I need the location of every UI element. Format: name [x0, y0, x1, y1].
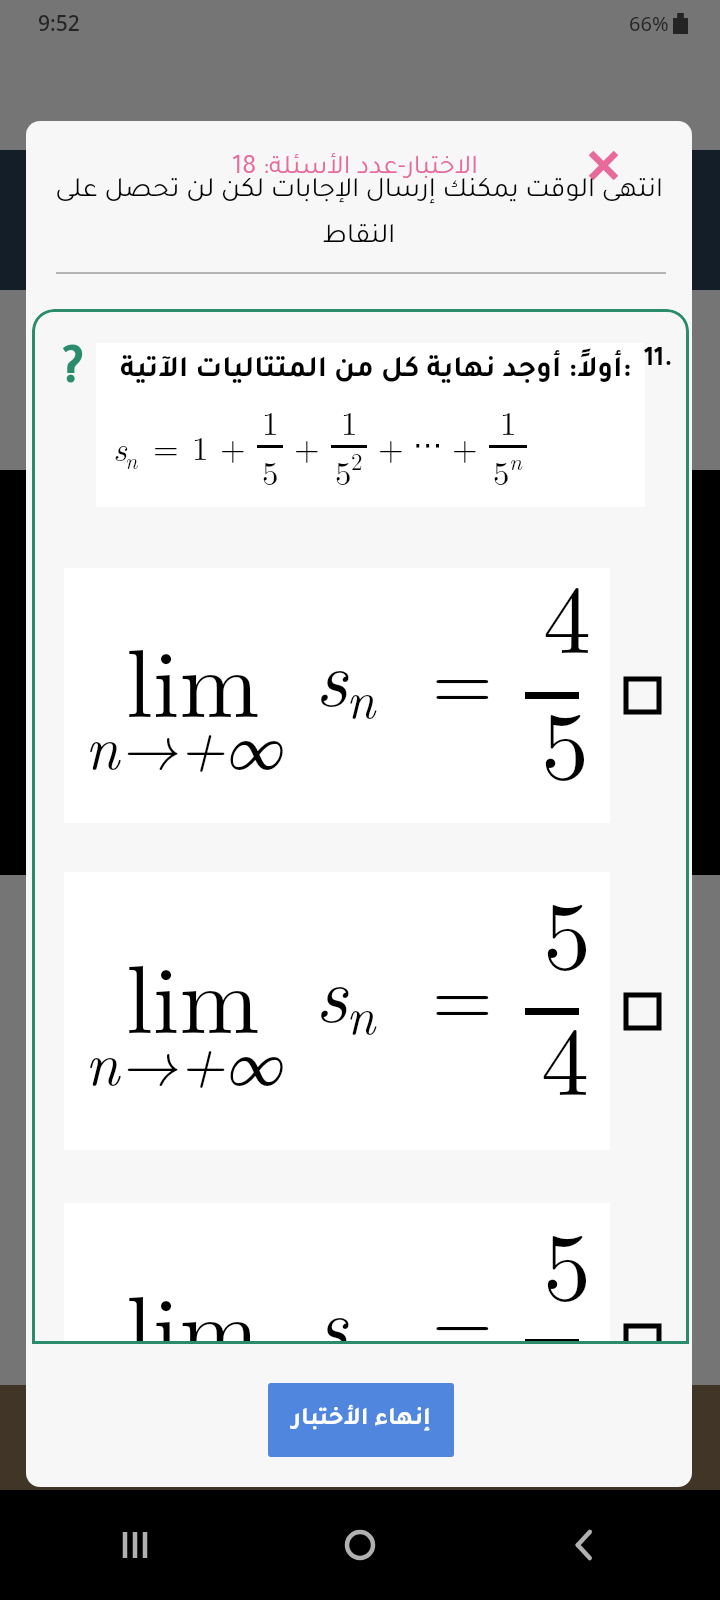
staticText: +: [378, 423, 404, 470]
staticText: s: [315, 616, 348, 729]
button[interactable]: lim: [64, 872, 610, 1150]
staticText: n: [346, 975, 376, 1049]
staticText: 1: [341, 398, 358, 445]
staticText: +: [294, 423, 320, 470]
staticText: 5: [541, 671, 589, 807]
staticText: lim: [126, 925, 260, 1061]
staticText: 4: [543, 545, 591, 681]
staticText: s: [113, 423, 127, 471]
staticText: 5: [543, 861, 591, 997]
staticText: =: [432, 621, 493, 732]
staticText: n→+∞: [85, 1016, 282, 1102]
staticText: n: [509, 444, 522, 477]
button[interactable]: Home: [332, 1517, 388, 1573]
staticText: 4: [541, 987, 589, 1123]
button[interactable]: Select answer: [618, 987, 666, 1035]
staticText: 11.: [644, 348, 673, 375]
button[interactable]: إنهاء الأختبار: [268, 1383, 454, 1457]
staticText: 9:52: [38, 9, 80, 38]
staticText: n: [346, 1306, 376, 1344]
staticText: n: [125, 444, 138, 475]
staticText: s: [315, 932, 348, 1045]
staticText: 2: [351, 444, 363, 477]
staticText: n: [346, 659, 376, 733]
staticText: +: [220, 423, 246, 470]
staticText: ⋯: [413, 427, 443, 462]
staticText: 1: [262, 398, 279, 445]
button[interactable]: lim: [64, 1203, 610, 1344]
staticText: 1: [192, 423, 209, 470]
staticText: انتهى الوقت يمكنك إرسال الإجابات لكن لن …: [49, 178, 669, 252]
staticText: 66%: [629, 10, 669, 37]
staticText: الاختبار-عدد الأسئلة: 18: [232, 156, 478, 183]
staticText: 5: [493, 448, 510, 495]
button[interactable]: Recents: [108, 1517, 164, 1573]
staticText: lim: [126, 1256, 260, 1344]
staticText: 3: [541, 1318, 589, 1344]
button[interactable]: Select answer: [618, 1318, 666, 1344]
button[interactable]: Select answer: [618, 671, 666, 719]
staticText: أولاً: أوجد نهاية كل من المتتاليات الآتي…: [120, 357, 632, 387]
staticText: 5: [262, 448, 279, 495]
staticText: 5: [543, 1192, 591, 1328]
staticText: =: [432, 937, 493, 1048]
staticText: lim: [126, 609, 260, 745]
staticText: ?: [61, 345, 85, 403]
staticText: 1: [500, 398, 517, 445]
button[interactable]: Close: [581, 143, 625, 187]
staticText: =: [153, 423, 179, 470]
staticText: =: [432, 1268, 493, 1344]
button[interactable]: Back: [556, 1517, 612, 1573]
staticText: 5: [335, 448, 352, 495]
button[interactable]: lim: [64, 568, 610, 823]
staticText: إنهاء الأختبار: [292, 1408, 431, 1433]
staticText: n→+∞: [85, 700, 282, 786]
staticText: s: [315, 1263, 348, 1344]
staticText: +: [452, 423, 478, 470]
